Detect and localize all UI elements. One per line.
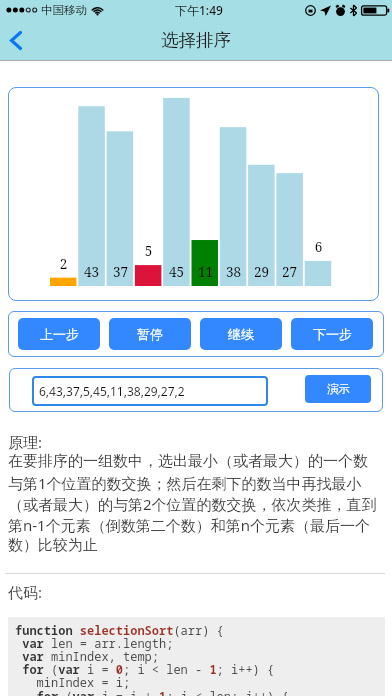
staticText: 45: [163, 263, 190, 281]
staticText: （或者最大）的与第2个位置的数交换，依次类推，直到: [8, 494, 377, 514]
button[interactable]: 继续: [200, 318, 282, 350]
staticText: 在要排序的一组数中，选出最小（或者最大）的一个数: [8, 452, 368, 471]
staticText: 原理:: [8, 432, 43, 452]
staticText: 6: [305, 238, 332, 256]
button[interactable]: 暂停: [109, 318, 191, 350]
staticText: 27: [276, 263, 303, 281]
staticText: 6,43,37,5,45,11,38,29,27,2: [39, 383, 185, 399]
staticText: 第n-1个元素（倒数第二个数）和第n个元素（最后一个: [8, 515, 370, 535]
staticText: minIndex = i;: [15, 674, 131, 690]
staticText: for (var j = i + 1; j < len; j++) {: [15, 688, 289, 696]
staticText: function selectionSort(arr) {: [15, 622, 224, 638]
staticText: 5: [135, 242, 162, 260]
staticText: 2: [50, 255, 77, 273]
staticText: var len = arr.length;: [15, 635, 174, 651]
staticText: 11: [192, 263, 219, 281]
staticText: 下一步: [313, 326, 352, 342]
button[interactable]: 演示: [305, 375, 371, 403]
button[interactable]: 下一步: [291, 318, 373, 350]
staticText: 与第1个位置的数交换；然后在剩下的数当中再找最小: [8, 473, 362, 493]
staticText: 上一步: [40, 326, 79, 342]
staticText: 38: [220, 263, 247, 281]
staticText: 中国移动: [41, 3, 87, 17]
staticText: 43: [78, 263, 105, 281]
staticText: 代码:: [8, 582, 43, 602]
staticText: 数）比较为止: [8, 536, 98, 555]
staticText: 暂停: [137, 326, 163, 342]
staticText: 37: [107, 263, 134, 281]
staticText: 29: [248, 263, 275, 281]
staticText: 下午1:49: [175, 2, 223, 18]
staticText: var minIndex, temp;: [15, 648, 160, 664]
staticText: 选择排序: [161, 29, 231, 51]
staticText: 演示: [327, 382, 350, 396]
button[interactable]: 上一步: [18, 318, 100, 350]
staticText: 继续: [228, 326, 254, 342]
button[interactable]: Back: [0, 20, 44, 60]
staticText: for (var i = 0; i < len - 1; i++) {: [15, 661, 275, 677]
